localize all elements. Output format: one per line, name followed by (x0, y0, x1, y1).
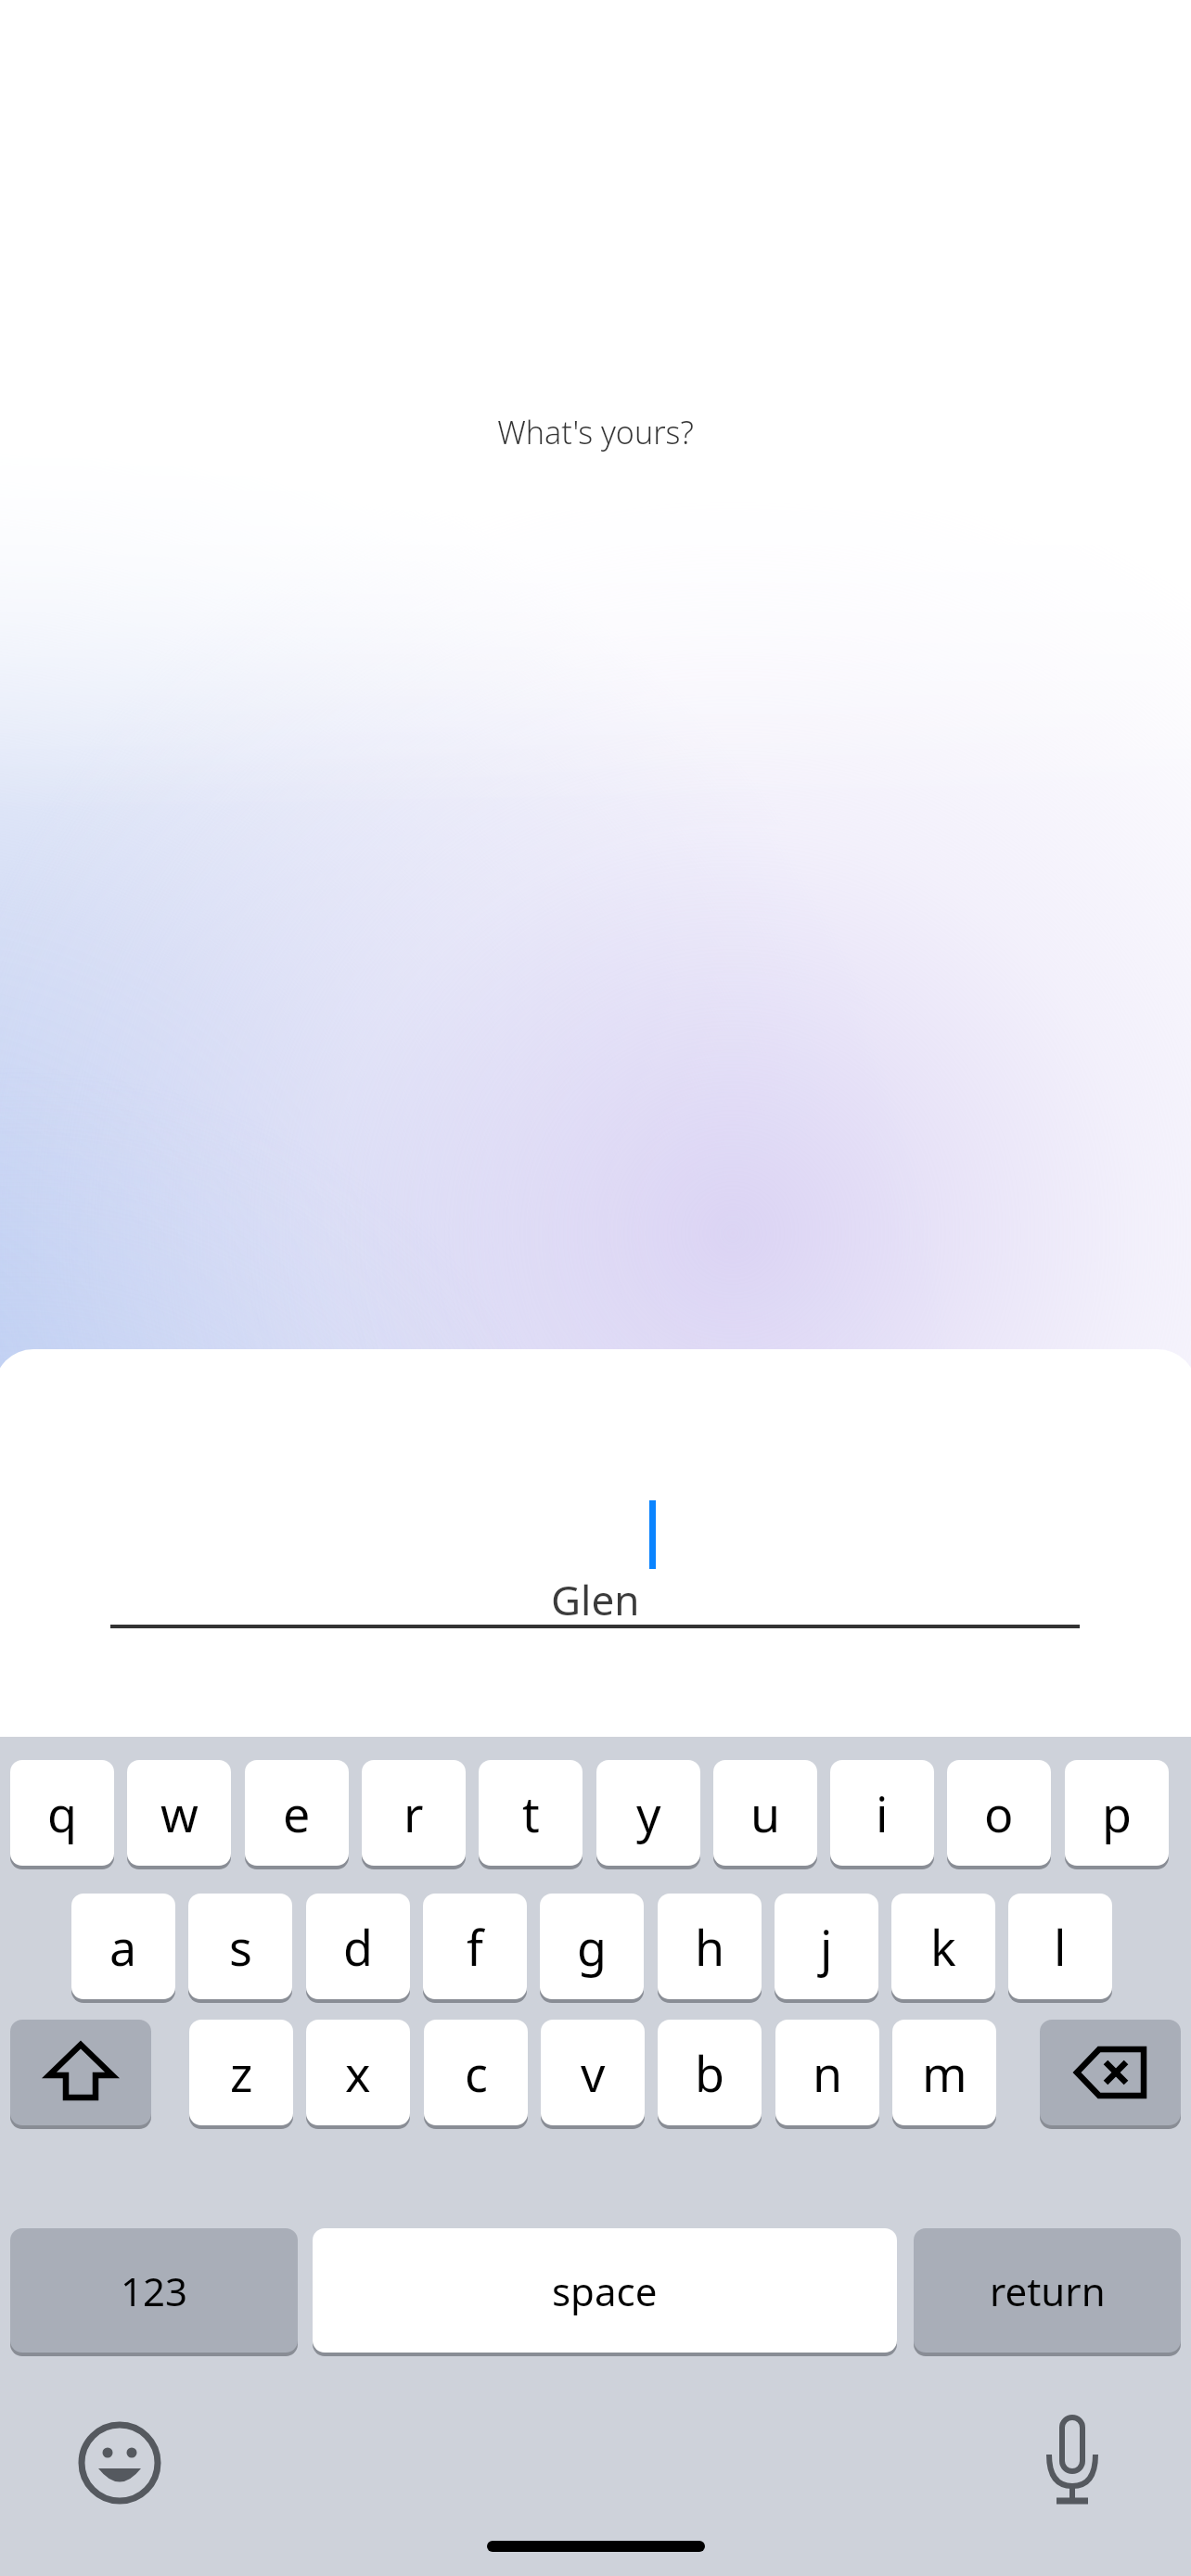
button[interactable]: e (245, 1760, 349, 1869)
button[interactable]: c (424, 2020, 528, 2129)
button[interactable]: return (914, 2228, 1181, 2356)
staticText: b (695, 2040, 724, 2106)
staticText: z (230, 2040, 253, 2106)
staticText: e (283, 1780, 311, 1846)
button[interactable]: k (891, 1894, 995, 2003)
button[interactable]: m (892, 2020, 996, 2129)
staticText: Glen (551, 1572, 640, 1627)
button[interactable]: o (947, 1760, 1051, 1869)
staticText: o (984, 1780, 1014, 1846)
button[interactable]: p (1065, 1760, 1169, 1869)
button[interactable]: Dictation (1005, 2395, 1140, 2531)
staticText: h (695, 1914, 725, 1980)
staticText: w (160, 1780, 198, 1846)
button[interactable]: n (775, 2020, 879, 2129)
button[interactable]: i (830, 1760, 934, 1869)
staticText: u (750, 1780, 781, 1846)
staticText: a (109, 1914, 137, 1980)
staticText: q (47, 1780, 77, 1846)
button[interactable]: r (362, 1760, 466, 1869)
staticText: g (577, 1914, 607, 1980)
button[interactable]: space (313, 2228, 897, 2356)
staticText: c (465, 2040, 488, 2106)
staticText: y (636, 1780, 661, 1846)
button[interactable]: Shift (10, 2020, 151, 2129)
button[interactable]: w (127, 1760, 231, 1869)
staticText: m (922, 2040, 967, 2106)
staticText: What's yours? (0, 411, 1191, 2576)
button[interactable]: Glen (110, 1539, 1081, 1660)
button[interactable]: Backspace (1040, 2020, 1181, 2129)
button[interactable]: d (306, 1894, 410, 2003)
button[interactable]: u (713, 1760, 817, 1869)
button[interactable]: a (71, 1894, 175, 2003)
staticText: i (876, 1780, 889, 1846)
button[interactable]: f (423, 1894, 527, 2003)
staticText: 123 (121, 2264, 188, 2317)
staticText: v (581, 2040, 606, 2106)
staticText: p (1102, 1780, 1132, 1846)
button[interactable]: g (540, 1894, 644, 2003)
button[interactable]: x (306, 2020, 410, 2129)
staticText: n (813, 2040, 843, 2106)
staticText: s (229, 1914, 252, 1980)
staticText: x (345, 2040, 371, 2106)
staticText: l (1054, 1914, 1067, 1980)
button[interactable]: j (775, 1894, 878, 2003)
button[interactable]: q (10, 1760, 114, 1869)
button[interactable]: y (596, 1760, 700, 1869)
button[interactable]: s (188, 1894, 292, 2003)
staticText: d (343, 1914, 373, 1980)
staticText: space (552, 2264, 658, 2317)
staticText: t (522, 1780, 540, 1846)
staticText: f (467, 1914, 483, 1980)
staticText: j (820, 1914, 833, 1980)
button[interactable]: b (658, 2020, 762, 2129)
staticText: r (403, 1780, 424, 1846)
staticText: return (990, 2264, 1106, 2317)
staticText: k (930, 1914, 956, 1980)
button[interactable]: z (189, 2020, 293, 2129)
button[interactable]: Emoji keyboard (52, 2395, 187, 2531)
button[interactable]: l (1008, 1894, 1112, 2003)
button[interactable]: h (658, 1894, 762, 2003)
button[interactable]: t (479, 1760, 583, 1869)
button[interactable]: v (541, 2020, 645, 2129)
button[interactable]: 123 (10, 2228, 298, 2356)
